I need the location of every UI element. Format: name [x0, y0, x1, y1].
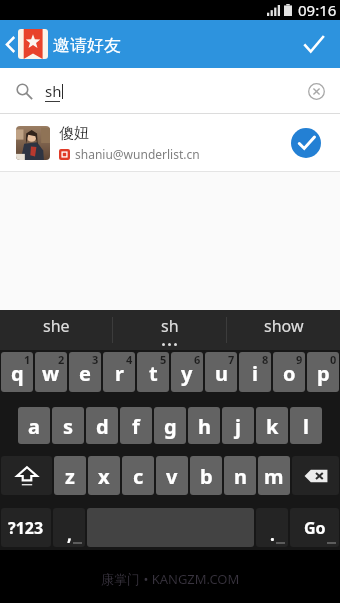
staticText: g — [164, 413, 177, 440]
button[interactable]: she — [0, 310, 112, 350]
staticText: r — [115, 360, 124, 387]
staticText: she — [43, 315, 70, 337]
staticText: y — [181, 360, 193, 387]
staticText: k — [266, 413, 279, 440]
button[interactable]: . — [256, 508, 288, 547]
staticText: sh — [45, 81, 62, 101]
staticText: a — [28, 413, 40, 440]
staticText: 2 — [58, 352, 65, 367]
staticText: 1 — [24, 352, 31, 367]
button[interactable]: b — [190, 456, 222, 495]
staticText: c — [133, 463, 144, 490]
button[interactable]: r — [103, 352, 135, 392]
button[interactable]: k — [256, 407, 288, 444]
button[interactable]: i — [239, 352, 271, 392]
button[interactable]: f — [120, 407, 152, 444]
button[interactable]: j — [222, 407, 254, 444]
button[interactable]: z — [54, 456, 86, 495]
button[interactable]: show — [227, 310, 340, 350]
staticText: 康掌门 • KANGZM.COM — [101, 570, 240, 588]
staticText: 09:16 — [298, 0, 337, 20]
button[interactable]: ?123 — [1, 508, 51, 547]
staticText: ?123 — [8, 517, 44, 539]
staticText: m — [264, 463, 284, 490]
staticText: q — [11, 360, 24, 387]
staticText: 7 — [228, 352, 235, 367]
button[interactable]: d — [86, 407, 118, 444]
button[interactable]: l — [290, 407, 322, 444]
button[interactable]: Clear text — [303, 78, 329, 104]
staticText: i — [252, 360, 258, 387]
staticText: 3 — [92, 352, 99, 367]
button[interactable]: v — [156, 456, 188, 495]
button[interactable]: q — [1, 352, 33, 392]
staticText: 0 — [330, 352, 337, 367]
staticText: Go — [304, 517, 326, 539]
button[interactable]: w — [35, 352, 67, 392]
staticText: 傻妞 — [59, 124, 89, 143]
staticText: l — [303, 413, 309, 440]
staticText: 4 — [126, 352, 133, 367]
button[interactable]: h — [188, 407, 220, 444]
staticText: w — [42, 360, 60, 387]
staticText: z — [65, 463, 75, 490]
button[interactable]: Backspace — [292, 456, 339, 495]
button[interactable]: Back — [0, 20, 52, 68]
button[interactable]: a — [18, 407, 50, 444]
staticText: n — [234, 463, 247, 490]
button[interactable]: m — [258, 456, 290, 495]
staticText: 邀请好友 — [53, 35, 121, 56]
staticText: 5 — [160, 352, 167, 367]
button[interactable]: p — [307, 352, 339, 392]
staticText: b — [200, 463, 213, 490]
button[interactable]: Done — [286, 20, 340, 68]
staticText: 8 — [262, 352, 269, 367]
button[interactable]: e — [69, 352, 101, 392]
button[interactable]: o — [273, 352, 305, 392]
staticText: 6 — [194, 352, 201, 367]
staticText: x — [98, 463, 110, 490]
button[interactable]: Shift — [1, 456, 52, 495]
staticText: d — [96, 413, 109, 440]
button[interactable]: , — [53, 508, 85, 547]
button[interactable]: c — [122, 456, 154, 495]
staticText: sh — [161, 315, 179, 337]
staticText: u — [215, 360, 228, 387]
button[interactable]: g — [154, 407, 186, 444]
staticText: , — [67, 523, 72, 546]
button[interactable]: s — [52, 407, 84, 444]
staticText: s — [63, 413, 74, 440]
staticText: p — [317, 360, 330, 387]
staticText: 9 — [296, 352, 303, 367]
staticText: o — [283, 360, 296, 387]
staticText: . — [270, 523, 275, 546]
button[interactable]: sh — [113, 310, 226, 350]
button[interactable]: y — [171, 352, 203, 392]
button[interactable]: n — [224, 456, 256, 495]
staticText: f — [132, 413, 140, 440]
staticText: e — [79, 360, 91, 387]
staticText: h — [198, 413, 211, 440]
staticText: t — [149, 360, 158, 387]
staticText: shaniu@wunderlist.cn — [75, 146, 200, 162]
staticText: show — [264, 315, 304, 337]
button[interactable]: Go — [290, 508, 339, 547]
staticText: j — [235, 413, 241, 440]
staticText: v — [166, 463, 178, 490]
button[interactable]: u — [205, 352, 237, 392]
button[interactable]: x — [88, 456, 120, 495]
button[interactable]: t — [137, 352, 169, 392]
button[interactable]: 傻妞 — [0, 114, 340, 172]
